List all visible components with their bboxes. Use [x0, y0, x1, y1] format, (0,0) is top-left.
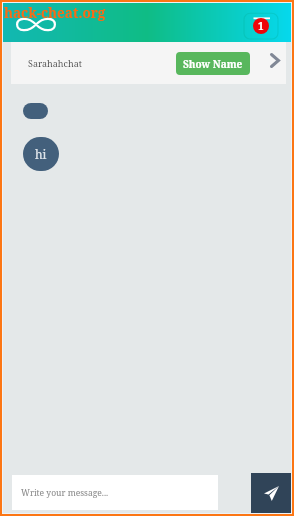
button[interactable]: Write your message...: [12, 475, 218, 510]
staticText: hack-cheat.org: [4, 4, 106, 22]
staticText: 1: [258, 19, 264, 33]
staticText: Write your message...: [21, 487, 109, 499]
staticText: Show Name: [183, 57, 243, 71]
staticText: Sarahahchat: [28, 57, 82, 69]
button[interactable]: Send: [251, 473, 291, 513]
button[interactable]: Notifications: [245, 10, 281, 39]
button[interactable]: More: [263, 48, 287, 78]
staticText: hi: [35, 146, 47, 162]
button[interactable]: Show Name: [176, 52, 250, 75]
